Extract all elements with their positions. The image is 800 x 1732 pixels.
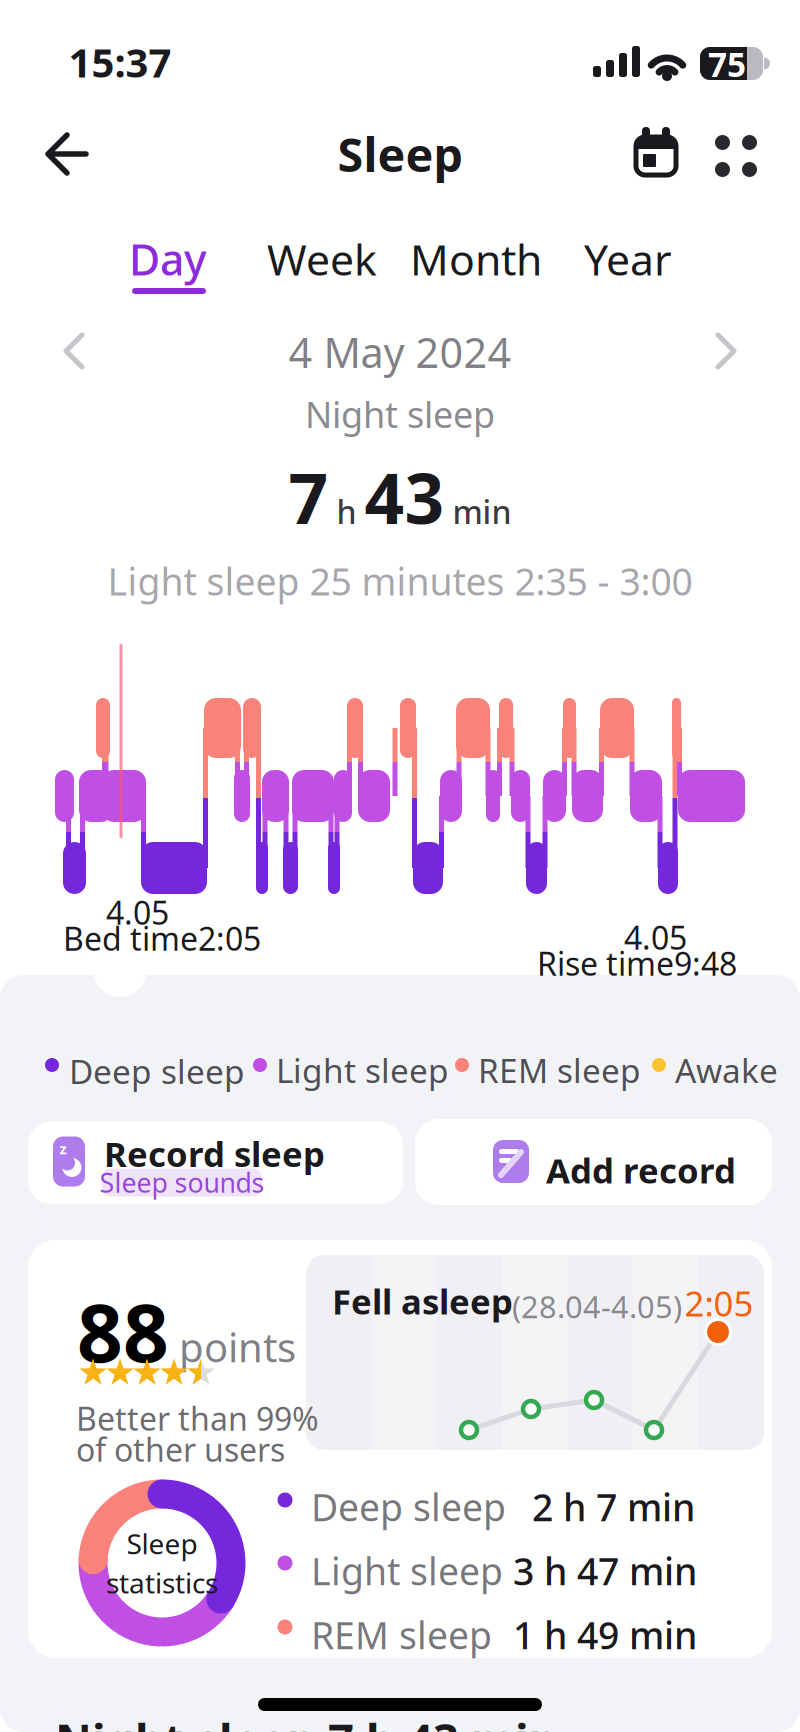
staticText: Record sleep [104, 1130, 325, 1176]
staticText: Bed time2:05 [63, 917, 261, 959]
staticText: (28.04-4.05) [512, 1286, 682, 1327]
staticText: min [452, 490, 511, 533]
staticText: Light sleep 25 minutes 2:35 - 3:00 [107, 556, 692, 606]
button[interactable]: Year [584, 231, 672, 287]
staticText: points [179, 1320, 296, 1373]
staticText: 4.05 [624, 916, 687, 958]
staticText: h [336, 490, 356, 533]
staticText: 2:05 [684, 1280, 753, 1326]
button[interactable]: Back [44, 135, 90, 177]
staticText: Deep sleep [311, 1482, 506, 1532]
staticText: Sleep [126, 1525, 197, 1562]
staticText: Month [410, 231, 542, 287]
staticText: statistics [106, 1564, 218, 1601]
staticText: 7 [288, 451, 328, 543]
staticText: 43 [364, 451, 444, 543]
staticText: Light sleep [276, 1048, 449, 1092]
button[interactable]: Day [129, 231, 207, 287]
staticText: 75 [708, 42, 746, 86]
staticText: Light sleep [311, 1546, 503, 1596]
staticText: of other users [76, 1428, 285, 1470]
staticText: Week [267, 231, 377, 287]
button[interactable]: Calendar [628, 127, 684, 183]
button[interactable]: Add record [415, 1119, 772, 1205]
staticText: Better than 99% [76, 1397, 319, 1439]
button[interactable]: Next day [712, 333, 738, 371]
staticText: Awake [675, 1048, 778, 1092]
staticText: Year [584, 231, 672, 287]
staticText: Sleep sounds [99, 1165, 264, 1200]
button[interactable]: z [28, 1121, 403, 1204]
staticText: 1 h 49 min [513, 1610, 697, 1660]
staticText: Add record [546, 1147, 736, 1193]
staticText: Night sleep 7 h 43 min [55, 1709, 558, 1732]
staticText: 2 h 7 min [532, 1482, 695, 1532]
staticText: Sleep [337, 123, 462, 185]
button[interactable]: Month [410, 231, 542, 287]
staticText: REM sleep [311, 1610, 492, 1660]
staticText: Rise time9:48 [537, 942, 737, 984]
staticText: Deep sleep [69, 1049, 245, 1093]
button[interactable]: Week [267, 231, 377, 287]
button[interactable]: Previous day [62, 333, 88, 371]
staticText: 4.05 [106, 891, 169, 933]
staticText: Fell asleep [332, 1278, 513, 1324]
staticText: Night sleep [305, 390, 495, 438]
staticText: z [59, 1139, 66, 1158]
staticText: Day [129, 231, 207, 287]
staticText: 15:37 [68, 35, 171, 88]
staticText: 88 [77, 1278, 169, 1384]
staticText: 3 h 47 min [513, 1546, 697, 1596]
button[interactable]: More [707, 127, 764, 184]
staticText: 4 May 2024 [288, 325, 511, 379]
staticText: REM sleep [478, 1048, 641, 1092]
